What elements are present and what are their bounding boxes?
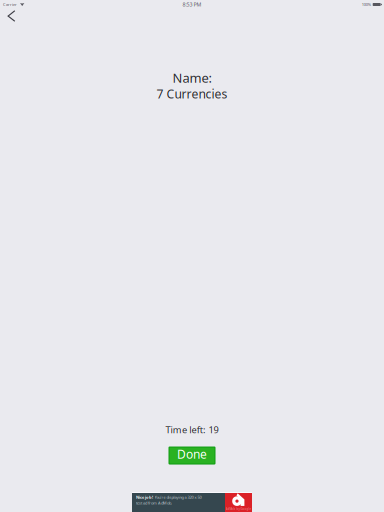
staticText: Name: — [172, 69, 211, 87]
staticText: Time left: 19 — [165, 423, 219, 436]
button[interactable]: Done — [169, 447, 215, 464]
button[interactable]: Advertisement: Nice job! You're displayi… — [132, 492, 252, 512]
staticText: AdMob by Google — [225, 507, 251, 511]
staticText: Nice job! — [136, 494, 153, 500]
staticText: test ad from AdMob. — [136, 500, 172, 505]
staticText: You're displaying a 320 x 50 — [154, 494, 201, 500]
staticText: 100% — [362, 2, 371, 7]
staticText: Carrier — [3, 2, 17, 7]
button[interactable]: Back — [0, 9, 23, 23]
staticText: 8:53 PM — [182, 1, 201, 8]
staticText: 7 Currencies — [156, 86, 227, 102]
staticText: Done — [177, 446, 207, 462]
